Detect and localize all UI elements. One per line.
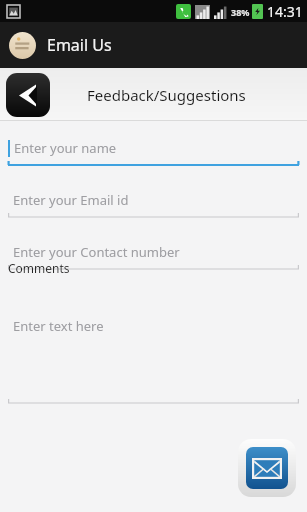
staticText: Enter text here (13, 317, 104, 335)
staticText: Email Us (47, 34, 112, 56)
button[interactable]: Enter your Contact number (8, 233, 299, 271)
button[interactable]: Enter your name (8, 129, 299, 167)
staticText: 38% (231, 6, 250, 18)
staticText: Enter your Email id (13, 191, 129, 209)
button[interactable]: Send email (236, 437, 297, 498)
button[interactable]: Back (6, 73, 50, 117)
staticText: Enter your name (14, 139, 117, 157)
button[interactable]: Email Us (0, 22, 307, 68)
staticText: Enter your Contact number (13, 243, 180, 261)
staticText: Feedback/Suggestions (87, 85, 246, 105)
staticText: Comments (8, 260, 70, 276)
button[interactable]: Enter text here (8, 281, 299, 405)
button[interactable]: Enter your Email id (8, 181, 299, 219)
staticText: 14:31 (267, 2, 303, 21)
